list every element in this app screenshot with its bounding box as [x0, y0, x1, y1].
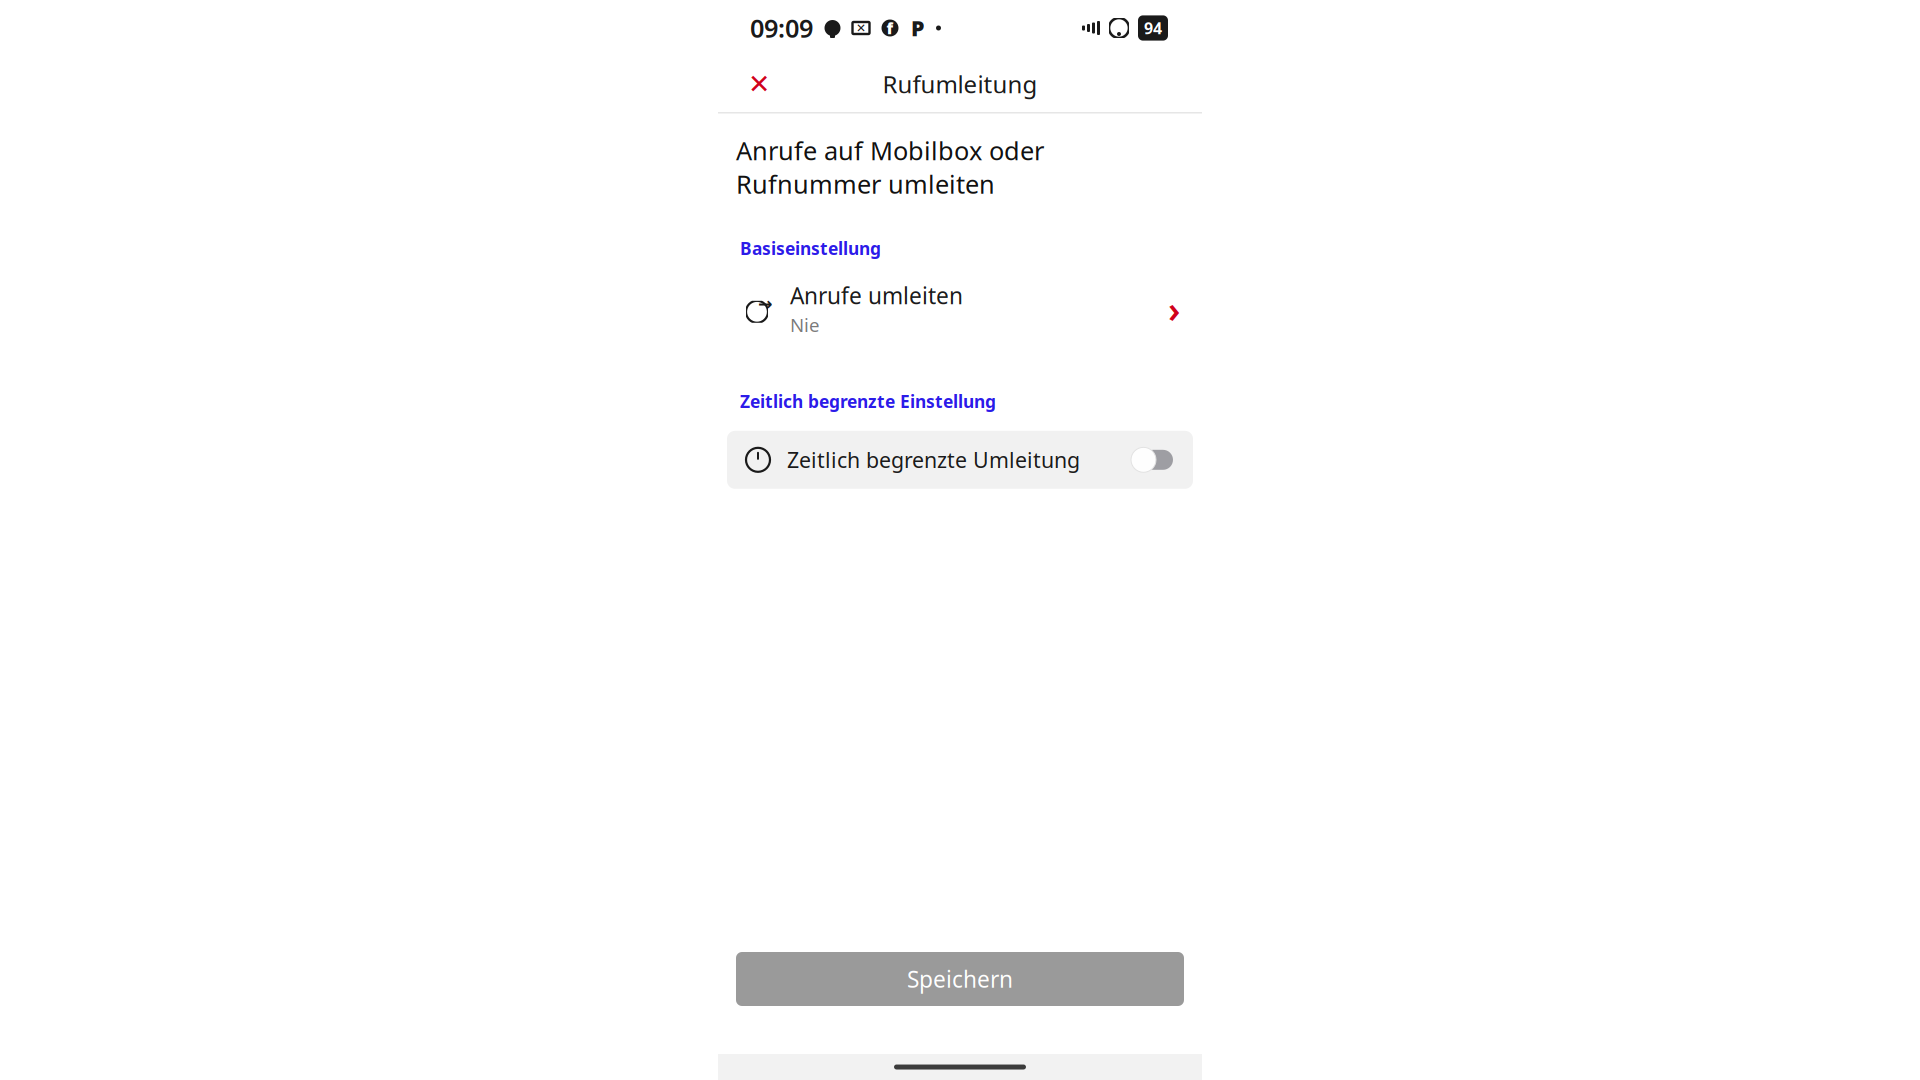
button[interactable]: Zeitlich begrenzte Umleitung	[727, 431, 1193, 489]
staticText: P	[911, 14, 924, 42]
staticText: Nie	[790, 312, 820, 337]
staticText: 94	[1144, 17, 1162, 39]
staticText: Zeitlich begrenzte Einstellung	[740, 390, 996, 413]
staticText: ›	[1168, 285, 1180, 333]
button[interactable]: 📞	[718, 280, 1202, 338]
staticText: 09:09	[750, 11, 813, 45]
staticText: Speichern	[907, 964, 1013, 994]
staticText: Anrufe auf Mobilbox oder Rufnummer umlei…	[736, 133, 1044, 201]
button[interactable]: Speichern	[736, 952, 1184, 1006]
staticText: f	[886, 17, 893, 39]
staticText: Basiseinstellung	[740, 237, 881, 260]
button[interactable]: Schließen	[736, 61, 782, 107]
staticText: ✕	[856, 21, 866, 35]
staticText: ✕	[748, 69, 770, 99]
staticText: Zeitlich begrenzte Umleitung	[787, 446, 1080, 474]
staticText: Rufumleitung	[882, 68, 1037, 100]
staticText: Anrufe umleiten	[790, 280, 963, 310]
staticText: →	[758, 294, 773, 313]
